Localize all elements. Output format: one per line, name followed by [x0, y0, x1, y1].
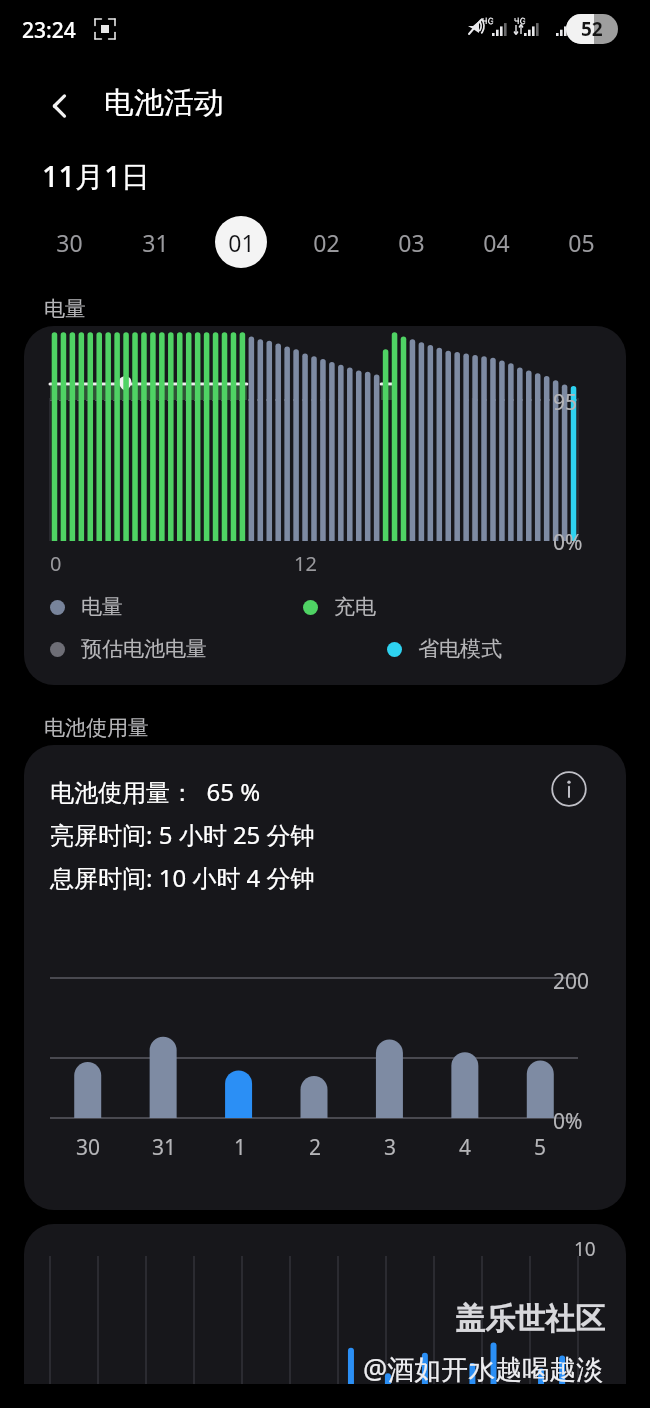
staticText: 03: [398, 227, 425, 258]
button[interactable]: 02: [284, 212, 369, 272]
staticText: 亮屏时间: 5 小时 25 分钟: [50, 818, 315, 851]
button[interactable]: 01: [198, 212, 284, 272]
staticText: 0%: [553, 528, 583, 557]
staticText: 02: [313, 227, 340, 258]
button[interactable]: 05: [539, 212, 624, 272]
button[interactable]: 95: [24, 326, 626, 685]
staticText: 01: [228, 227, 255, 258]
staticText: 3: [384, 1133, 397, 1162]
button[interactable]: 03: [369, 212, 454, 272]
staticText: 2: [309, 1133, 322, 1162]
staticText: 4: [459, 1133, 472, 1162]
staticText: 0%: [553, 1107, 583, 1136]
staticText: 05: [568, 227, 595, 258]
staticText: 1: [234, 1133, 247, 1162]
button[interactable]: Info: [545, 765, 593, 813]
staticText: 电量: [44, 296, 86, 322]
staticText: @酒如开水越喝越淡: [363, 1350, 604, 1387]
staticText: 息屏时间: 10 小时 4 分钟: [50, 861, 315, 894]
staticText: 5: [534, 1133, 547, 1162]
staticText: 04: [483, 227, 510, 258]
staticText: 30: [76, 1133, 101, 1162]
staticText: 预估电池电量: [81, 636, 207, 662]
staticText: 电量: [81, 594, 123, 620]
staticText: 95: [553, 388, 578, 417]
button[interactable]: 04: [454, 212, 539, 272]
staticText: 省电模式: [418, 636, 502, 662]
staticText: 充电: [334, 594, 376, 620]
staticText: 盖乐世社区: [455, 1300, 605, 1338]
staticText: 31: [142, 227, 169, 258]
button[interactable]: 30: [26, 212, 112, 272]
staticText: 电池活动: [104, 84, 224, 122]
button[interactable]: 电池使用量： 65 %: [24, 745, 626, 1210]
staticText: 52: [581, 16, 603, 42]
staticText: 200: [553, 967, 590, 996]
staticText: 31: [152, 1133, 177, 1162]
button[interactable]: Back: [32, 78, 88, 134]
staticText: 电池使用量： 65 %: [50, 775, 261, 808]
staticText: 30: [56, 227, 83, 258]
staticText: 12: [294, 550, 317, 577]
staticText: 23:24: [22, 16, 76, 45]
button[interactable]: 31: [112, 212, 198, 272]
staticText: 电池使用量: [44, 715, 149, 741]
staticText: 11月1日: [42, 156, 150, 196]
staticText: 0: [50, 550, 62, 577]
staticText: 10: [574, 1236, 596, 1262]
button[interactable]: 10: [24, 1224, 626, 1384]
